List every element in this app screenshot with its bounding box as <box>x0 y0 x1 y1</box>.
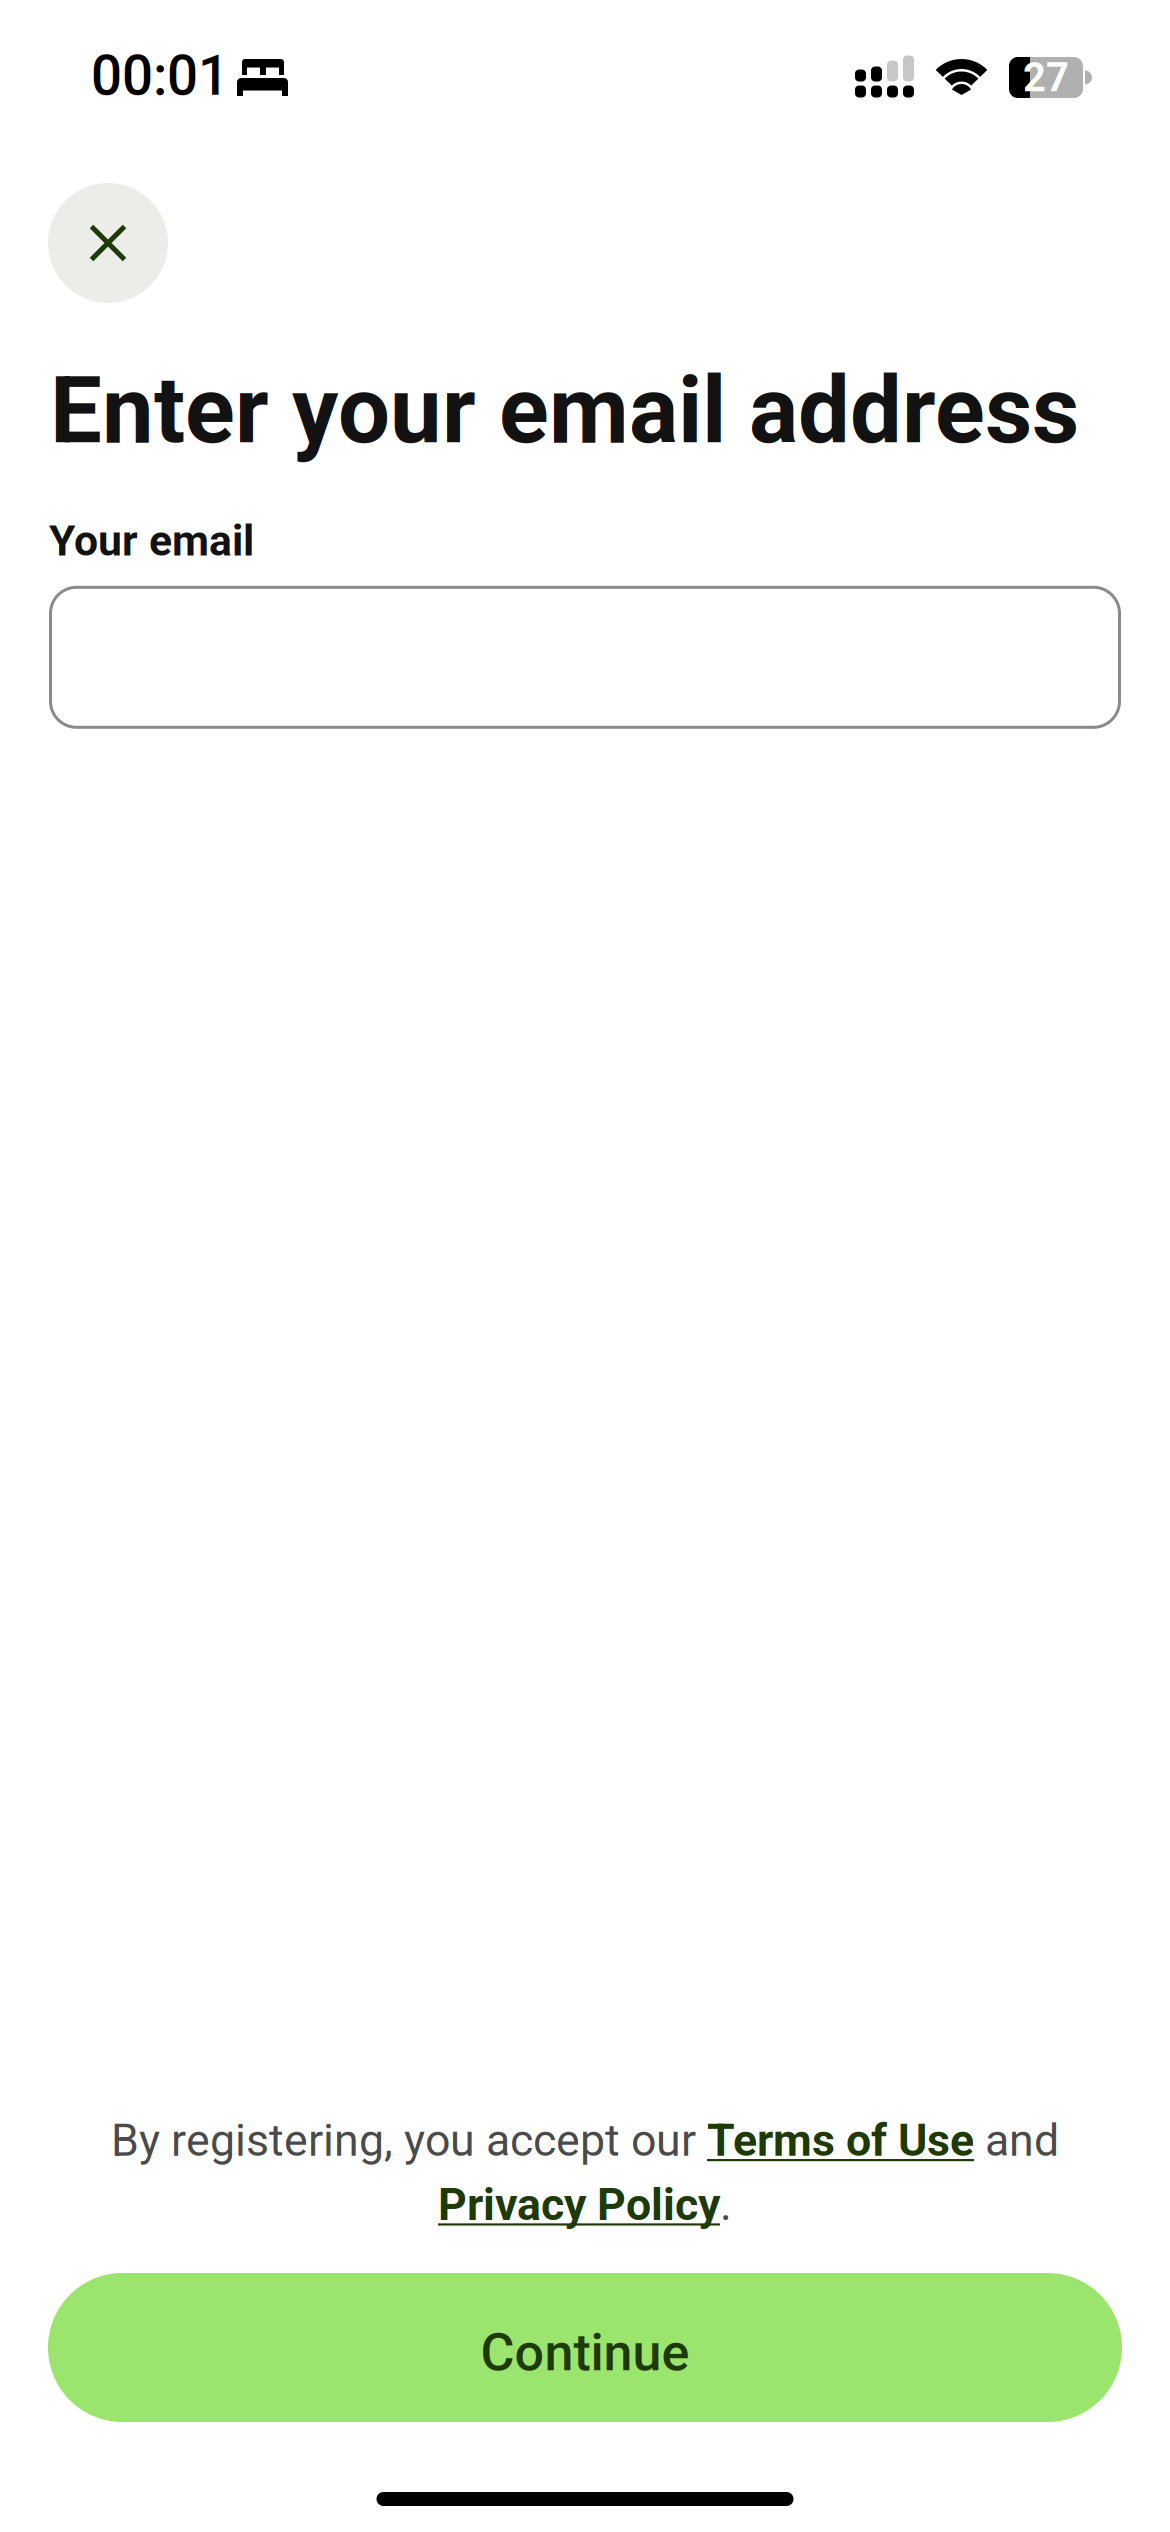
button[interactable]: Close <box>48 183 168 303</box>
staticText: By registering, you accept our Terms of … <box>111 2114 1059 2167</box>
button[interactable]: Continue <box>48 2273 1122 2422</box>
staticText: Continue <box>480 2322 689 2383</box>
staticText: Your email <box>49 516 254 566</box>
button[interactable]: By registering, you accept our Terms of … <box>111 2114 1059 2167</box>
staticText: Privacy Policy. <box>438 2179 732 2231</box>
staticText: Enter your email address <box>50 357 1079 465</box>
staticText: 27 <box>1023 54 1069 101</box>
staticText: 00:01 <box>91 44 229 108</box>
button[interactable]: Privacy Policy. <box>438 2179 732 2231</box>
button[interactable]: Your email <box>49 586 1121 729</box>
